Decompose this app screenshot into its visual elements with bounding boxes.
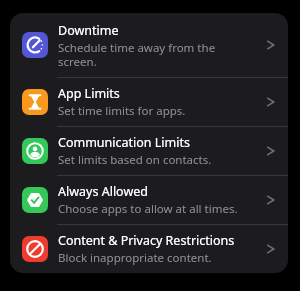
other: Open Communication Limits bbox=[262, 142, 280, 160]
staticText: Choose apps to allow at all times. bbox=[58, 201, 238, 217]
other: Open Always Allowed bbox=[262, 191, 280, 209]
staticText: Content & Privacy Restrictions bbox=[58, 232, 235, 249]
other: Open Downtime bbox=[262, 36, 280, 54]
staticText: Downtime bbox=[58, 22, 119, 39]
staticText: Always Allowed bbox=[58, 183, 148, 200]
staticText: App Limits bbox=[58, 85, 120, 102]
other: Open App Limits bbox=[262, 93, 280, 111]
other: Open Content & Privacy Restrictions bbox=[262, 240, 280, 258]
staticText: Block inappropriate content. bbox=[58, 250, 212, 266]
button[interactable]: Content & Privacy Restrictions bbox=[10, 225, 288, 273]
staticText: Set time limits for apps. bbox=[58, 103, 186, 119]
button[interactable]: Downtime bbox=[10, 13, 288, 77]
button[interactable]: Always Allowed bbox=[10, 176, 288, 224]
staticText: Schedule time away from the screen. bbox=[58, 40, 256, 69]
button[interactable]: App Limits bbox=[10, 78, 288, 126]
staticText: Set limits based on contacts. bbox=[58, 152, 212, 168]
button[interactable]: Communication Limits bbox=[10, 127, 288, 175]
staticText: Communication Limits bbox=[58, 134, 190, 151]
